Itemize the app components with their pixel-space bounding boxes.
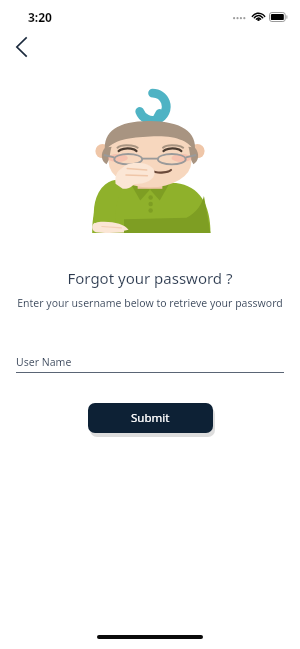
- staticText: 3:20: [28, 9, 52, 25]
- staticText: Enter your username below to retrieve yo…: [17, 296, 283, 310]
- button[interactable]: Back: [6, 32, 36, 62]
- button[interactable]: User Name: [16, 355, 284, 373]
- button[interactable]: Submit: [88, 403, 213, 433]
- staticText: Submit: [131, 410, 170, 426]
- staticText: Forgot your password ?: [67, 268, 233, 288]
- staticText: User Name: [16, 355, 72, 369]
